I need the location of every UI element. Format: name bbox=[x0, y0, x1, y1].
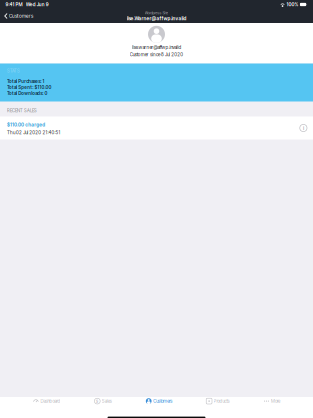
staticText: ilse.warner@affwp.invalid bbox=[131, 44, 181, 50]
staticText: More bbox=[271, 398, 280, 404]
staticText: Total bbox=[7, 85, 17, 90]
button[interactable]: $ bbox=[93, 394, 113, 409]
button[interactable]: Dashboard bbox=[32, 394, 61, 409]
staticText: $110.00 bbox=[34, 85, 51, 90]
staticText: STATS bbox=[7, 68, 20, 73]
staticText: Total bbox=[7, 78, 17, 84]
staticText: Dashboard bbox=[40, 398, 60, 404]
staticText: charged bbox=[25, 122, 45, 128]
staticText: 9:41 bbox=[5, 2, 14, 7]
staticText: Jul bbox=[165, 52, 170, 57]
staticText: 1 bbox=[42, 78, 44, 84]
staticText: Sales bbox=[102, 398, 112, 404]
button[interactable]: Customers bbox=[0, 9, 37, 23]
staticText: ilse.Warner@affwp.invalid bbox=[126, 16, 186, 21]
button[interactable]: $110.00 bbox=[0, 116, 313, 139]
staticText: Jul bbox=[23, 130, 28, 135]
staticText: Jun bbox=[37, 2, 45, 7]
button[interactable]: More bbox=[263, 394, 281, 409]
staticText: 2020 bbox=[29, 130, 41, 135]
staticText: Thu bbox=[7, 130, 15, 135]
staticText: Total bbox=[7, 91, 17, 96]
staticText: Purchases: bbox=[18, 78, 41, 84]
staticText: 9 bbox=[46, 2, 49, 7]
button[interactable]: Products bbox=[205, 394, 231, 409]
staticText: Customers bbox=[153, 398, 172, 404]
staticText: Wordpress bbox=[145, 11, 162, 15]
staticText: 8 bbox=[161, 52, 164, 57]
staticText: Products bbox=[214, 398, 230, 404]
staticText: Wed bbox=[26, 2, 36, 7]
staticText: Spent: bbox=[18, 85, 33, 90]
staticText: PM bbox=[15, 2, 22, 7]
staticText: Customers bbox=[9, 13, 33, 19]
staticText: RECENT bbox=[7, 108, 23, 113]
staticText: SALES bbox=[24, 108, 37, 113]
staticText: 100% bbox=[286, 2, 298, 7]
staticText: since bbox=[150, 52, 160, 57]
staticText: 0 bbox=[44, 91, 47, 96]
staticText: Site bbox=[162, 11, 168, 15]
staticText: 02 bbox=[16, 130, 22, 135]
staticText: $ bbox=[96, 398, 99, 404]
staticText: Downloads: bbox=[18, 91, 43, 96]
staticText: Customer bbox=[130, 52, 149, 57]
staticText: $110.00 bbox=[7, 122, 24, 128]
staticText: 21:40:51 bbox=[42, 130, 60, 135]
staticText: 2020 bbox=[171, 52, 183, 57]
button[interactable]: Customers bbox=[145, 394, 173, 409]
staticText: i bbox=[303, 125, 304, 131]
